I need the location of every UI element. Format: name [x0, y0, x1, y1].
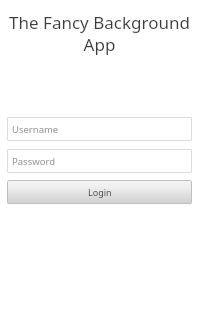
button[interactable]: Login: [7, 180, 192, 204]
button[interactable]: Password: [7, 149, 192, 173]
staticText: Login: [88, 186, 112, 198]
button[interactable]: Username: [7, 117, 192, 141]
staticText: The Fancy Background App: [7, 11, 192, 56]
staticText: Password: [12, 155, 55, 168]
staticText: Username: [12, 123, 59, 136]
